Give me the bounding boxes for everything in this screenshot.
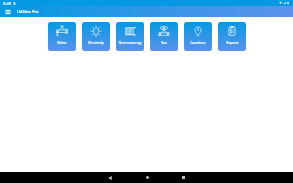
staticText: Reports (226, 40, 239, 45)
button[interactable]: Water (48, 22, 76, 51)
staticText: 9:20 (3, 1, 11, 6)
button[interactable]: Gas (150, 22, 178, 51)
staticText: Water (57, 40, 67, 45)
button[interactable]: Recent apps (178, 172, 189, 183)
staticText: Gas (161, 40, 167, 45)
staticText: Locations (190, 40, 206, 45)
button[interactable]: Thermoenergy (116, 22, 144, 51)
button[interactable]: Open navigation menu (2, 6, 13, 17)
button[interactable]: Back (104, 172, 115, 183)
staticText: Utilities Pro (17, 9, 39, 14)
button[interactable]: Reports (218, 22, 246, 51)
button[interactable]: Locations (184, 22, 212, 51)
button[interactable]: Electricity (82, 22, 110, 51)
button[interactable]: Home (142, 172, 153, 183)
staticText: Electricity (88, 40, 104, 45)
staticText: Thermoenergy (118, 40, 142, 45)
